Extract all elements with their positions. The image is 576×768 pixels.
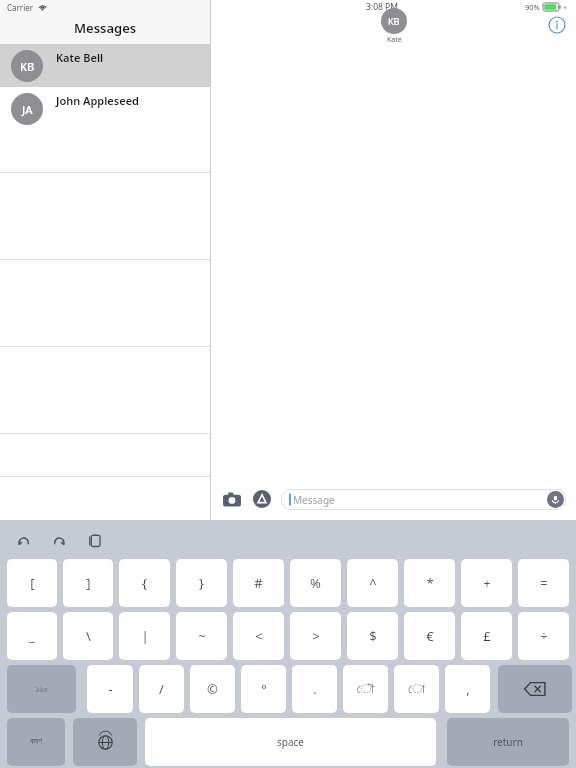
- staticText: *: [426, 574, 434, 592]
- staticText: Carrier: [7, 2, 34, 13]
- button[interactable]: Next keyboard: [73, 718, 137, 766]
- button[interactable]: -: [87, 665, 133, 713]
- staticText: °: [261, 680, 267, 698]
- staticText: #: [254, 574, 263, 592]
- button[interactable]: }: [176, 559, 227, 607]
- button[interactable]: Paste: [84, 529, 106, 551]
- button[interactable]: .: [292, 665, 337, 713]
- button[interactable]: Message: [281, 489, 566, 510]
- staticText: ©: [207, 680, 218, 698]
- staticText: return: [493, 735, 523, 749]
- button[interactable]: JA: [0, 87, 210, 130]
- staticText: ৌ: [357, 683, 374, 696]
- staticText: ~: [198, 627, 206, 645]
- button[interactable]: ©: [190, 665, 235, 713]
- staticText: KB: [388, 15, 400, 27]
- staticText: $: [369, 627, 377, 645]
- staticText: <: [255, 627, 263, 645]
- staticText: _: [29, 627, 35, 645]
- staticText: +: [483, 574, 491, 592]
- button[interactable]: ১২০: [7, 665, 76, 713]
- staticText: ^: [369, 574, 377, 592]
- button[interactable]: Redo: [48, 529, 70, 551]
- button[interactable]: [: [7, 559, 57, 607]
- staticText: ]: [86, 574, 91, 592]
- button[interactable]: +: [461, 559, 512, 607]
- button[interactable]: KB: [381, 8, 407, 45]
- staticText: £: [483, 627, 491, 645]
- button[interactable]: ^: [347, 559, 398, 607]
- button[interactable]: *: [404, 559, 455, 607]
- staticText: John Appleseed: [56, 93, 139, 108]
- staticText: 3:08 PM: [366, 1, 398, 13]
- button[interactable]: ~: [176, 612, 227, 660]
- staticText: 90%: [525, 2, 540, 12]
- button[interactable]: %: [290, 559, 341, 607]
- button[interactable]: °: [241, 665, 286, 713]
- staticText: Kate: [387, 35, 402, 45]
- button[interactable]: €: [404, 612, 455, 660]
- button[interactable]: |: [119, 612, 170, 660]
- staticText: ১২০: [35, 685, 48, 694]
- button[interactable]: £: [461, 612, 512, 660]
- button[interactable]: KB: [0, 44, 210, 87]
- staticText: .: [313, 680, 317, 698]
- staticText: /: [159, 680, 164, 698]
- staticText: €: [426, 627, 434, 645]
- button[interactable]: $: [347, 612, 398, 660]
- button[interactable]: ]: [63, 559, 113, 607]
- button[interactable]: Undo: [12, 529, 34, 551]
- staticText: ো: [408, 683, 425, 696]
- staticText: \: [86, 627, 91, 645]
- button[interactable]: ো: [394, 665, 439, 713]
- staticText: %: [310, 574, 321, 592]
- button[interactable]: ÷: [518, 612, 569, 660]
- staticText: {: [142, 574, 147, 592]
- button[interactable]: {: [119, 559, 170, 607]
- button[interactable]: Camera: [221, 488, 243, 510]
- button[interactable]: Backspace: [498, 665, 572, 713]
- staticText: space: [277, 735, 304, 749]
- staticText: |: [141, 627, 149, 645]
- staticText: ,: [466, 680, 470, 698]
- staticText: Message: [293, 493, 335, 507]
- staticText: -: [108, 680, 113, 698]
- button[interactable]: <: [233, 612, 284, 660]
- button[interactable]: #: [233, 559, 284, 607]
- button[interactable]: /: [139, 665, 184, 713]
- staticText: }: [199, 574, 204, 592]
- button[interactable]: >: [290, 612, 341, 660]
- button[interactable]: =: [518, 559, 569, 607]
- button[interactable]: কযগ: [7, 718, 65, 766]
- button[interactable]: App Store: [251, 488, 273, 510]
- staticText: =: [540, 574, 548, 592]
- button[interactable]: return: [447, 718, 569, 766]
- button[interactable]: _: [7, 612, 57, 660]
- staticText: কযগ: [30, 738, 42, 746]
- staticText: >: [312, 627, 320, 645]
- staticText: KB: [20, 59, 35, 74]
- staticText: ÷: [540, 627, 548, 645]
- button[interactable]: \: [63, 612, 113, 660]
- staticText: Messages: [74, 19, 137, 37]
- button[interactable]: Dictate: [547, 491, 564, 508]
- button[interactable]: space: [145, 718, 436, 766]
- button[interactable]: ৌ: [343, 665, 388, 713]
- button[interactable]: Details: [548, 16, 566, 34]
- button[interactable]: ,: [445, 665, 490, 713]
- staticText: [: [30, 574, 35, 592]
- staticText: Kate Bell: [56, 50, 104, 65]
- staticText: ⚡: [563, 4, 568, 11]
- staticText: JA: [22, 102, 33, 117]
